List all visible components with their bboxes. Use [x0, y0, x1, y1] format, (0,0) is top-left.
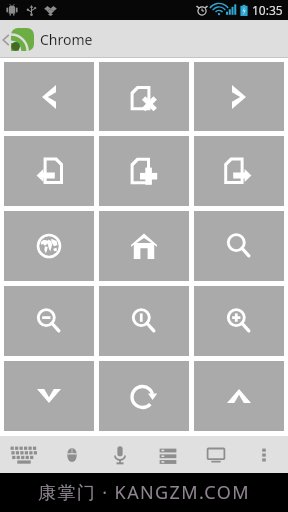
button[interactable]: Home — [99, 211, 189, 281]
button[interactable]: Zoom in — [194, 286, 284, 356]
button[interactable]: Scroll down — [4, 361, 94, 431]
button[interactable]: New tab — [99, 136, 189, 206]
button[interactable]: Scroll up — [194, 361, 284, 431]
button[interactable]: Back — [4, 62, 94, 131]
staticText: 10:35 — [252, 2, 283, 18]
staticText: 康掌门 · KANGZM.COM — [38, 480, 250, 505]
button[interactable]: Search — [194, 211, 284, 281]
button[interactable]: More options — [240, 436, 288, 473]
button[interactable]: Keyboard — [0, 436, 48, 473]
button[interactable]: Actual size — [99, 286, 189, 356]
button[interactable]: Reload — [99, 361, 189, 431]
staticText: Chrome — [40, 30, 93, 49]
button[interactable]: Display — [192, 436, 240, 473]
button[interactable]: Open in new window — [194, 136, 284, 206]
button[interactable]: Close tab — [99, 62, 189, 131]
button[interactable]: Server list — [144, 436, 192, 473]
button[interactable]: Zoom out — [4, 286, 94, 356]
button[interactable]: Open page — [4, 136, 94, 206]
button[interactable]: Mouse — [48, 436, 96, 473]
button[interactable]: Browser — [4, 211, 94, 281]
button[interactable]: Forward — [194, 62, 284, 131]
button[interactable]: Microphone — [96, 436, 144, 473]
